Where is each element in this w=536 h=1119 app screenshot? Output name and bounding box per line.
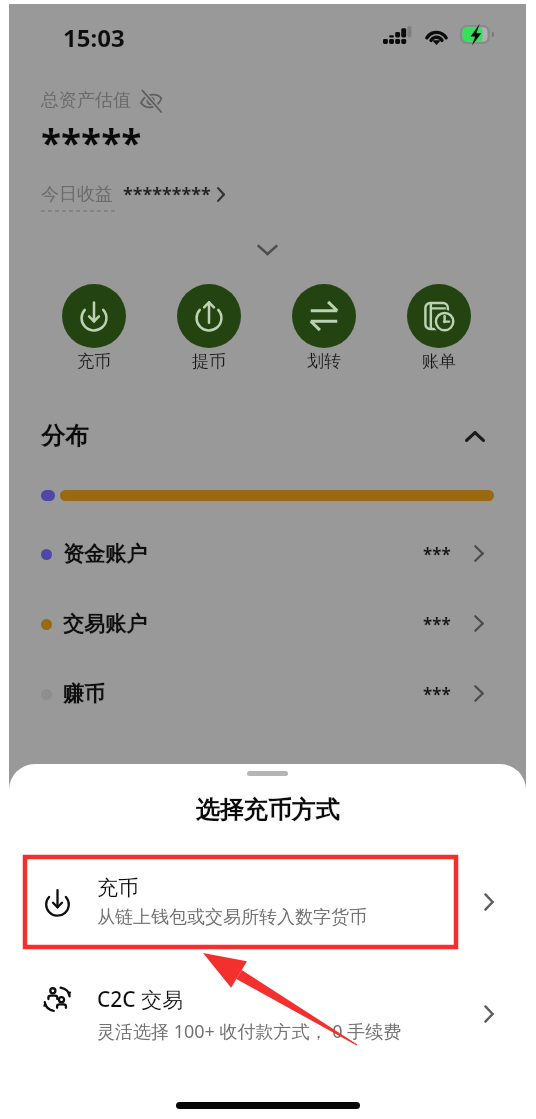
button[interactable]: 分布 bbox=[41, 416, 494, 456]
button[interactable]: 资金账户 bbox=[41, 519, 494, 589]
staticText: 交易账户 bbox=[63, 611, 147, 637]
staticText: 账单 bbox=[422, 351, 456, 372]
staticText: 提币 bbox=[192, 351, 226, 372]
staticText: 划转 bbox=[307, 351, 341, 372]
staticText: 今日收益 bbox=[41, 183, 113, 206]
staticText: 充币 bbox=[77, 351, 111, 372]
staticText: ***** bbox=[41, 117, 142, 167]
staticText: 从链上钱包或交易所转入数字货币 bbox=[97, 906, 367, 929]
staticText: *** bbox=[423, 683, 451, 706]
staticText: 分布 bbox=[41, 421, 89, 451]
button[interactable]: 交易账户 bbox=[41, 589, 494, 659]
staticText: 充币 bbox=[97, 875, 139, 901]
staticText: ********* bbox=[123, 182, 211, 207]
button[interactable]: C2C 交易 bbox=[33, 969, 511, 1059]
button[interactable]: 赚币 bbox=[41, 659, 494, 729]
button[interactable]: 充币 bbox=[33, 857, 511, 947]
other: Collapse bbox=[465, 431, 485, 442]
button[interactable]: 划转 bbox=[292, 284, 356, 372]
button[interactable]: 充币 bbox=[62, 284, 126, 372]
staticText: *** bbox=[423, 543, 451, 566]
staticText: 灵活选择 100+ 收付款方式， 0 手续费 bbox=[97, 1019, 402, 1044]
staticText: 总资产估值 bbox=[41, 89, 131, 112]
staticText: *** bbox=[423, 613, 451, 636]
button[interactable]: 提币 bbox=[177, 284, 241, 372]
staticText: 15:03 bbox=[63, 21, 125, 54]
button[interactable]: 账单 bbox=[407, 284, 471, 372]
other: Expand bbox=[257, 244, 278, 256]
staticText: 选择充币方式 bbox=[9, 795, 526, 825]
staticText: C2C 交易 bbox=[97, 985, 184, 1014]
staticText: 赚币 bbox=[63, 681, 105, 707]
staticText: 资金账户 bbox=[63, 541, 147, 567]
